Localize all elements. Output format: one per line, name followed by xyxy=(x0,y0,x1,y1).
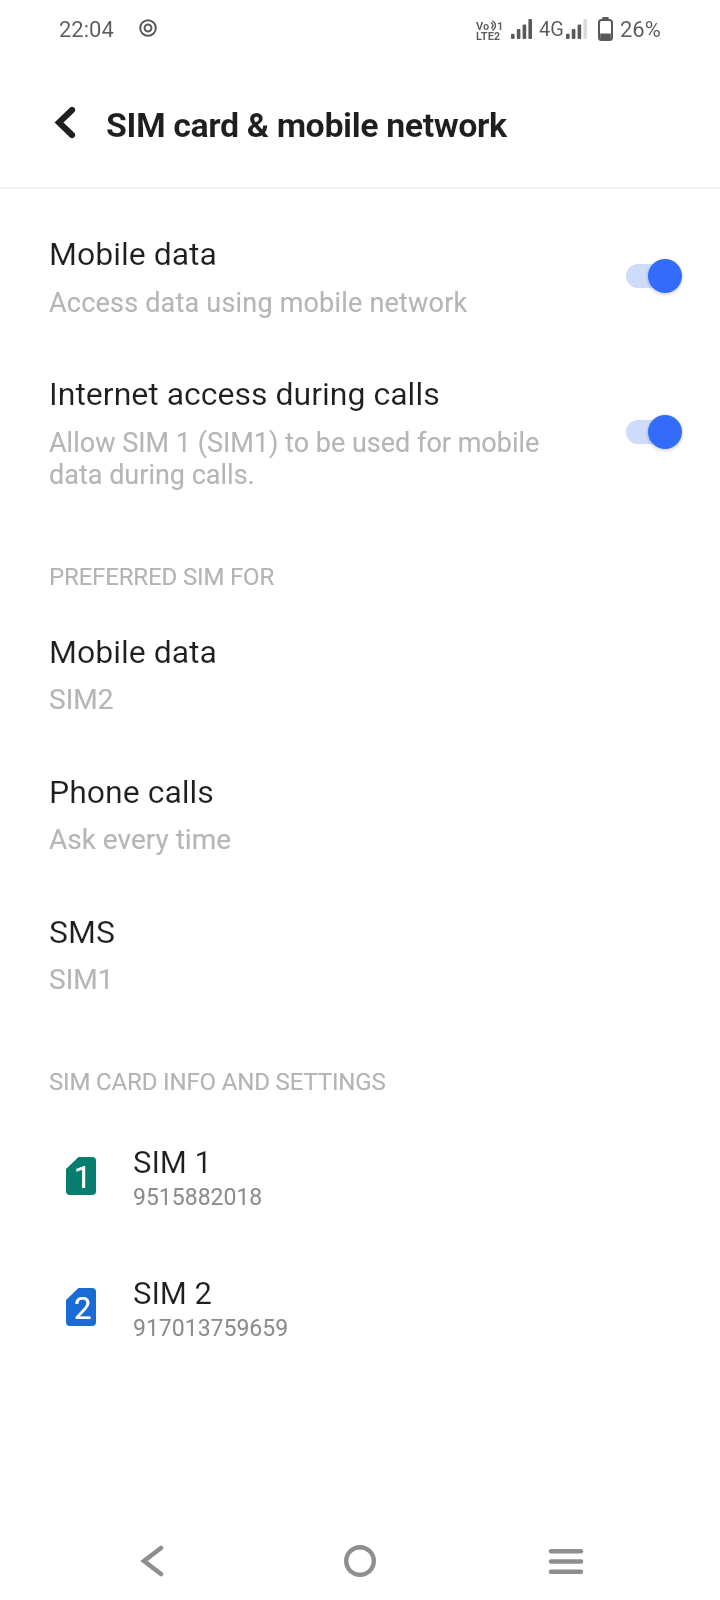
button[interactable]: Recent apps xyxy=(526,1521,606,1600)
staticText: 917013759659 xyxy=(133,1315,289,1342)
staticText: 2 xyxy=(74,1290,92,1326)
button[interactable]: Mobile data xyxy=(626,257,684,295)
button[interactable]: Back xyxy=(112,1521,192,1600)
staticText: SMS xyxy=(49,913,115,951)
button[interactable]: 1 xyxy=(0,1124,720,1224)
staticText: Access data using mobile network xyxy=(49,287,468,319)
button[interactable]: Home xyxy=(320,1521,400,1600)
staticText: 22:04 xyxy=(59,17,114,43)
button[interactable]: Internet access during calls xyxy=(626,413,684,451)
staticText: Phone calls xyxy=(49,773,214,811)
staticText: SIM CARD INFO AND SETTINGS xyxy=(49,1068,386,1096)
staticText: SIM card & mobile network xyxy=(106,105,507,145)
staticText: 1 xyxy=(497,20,502,33)
button[interactable]: Mobile data xyxy=(0,217,720,329)
button[interactable]: 2 xyxy=(0,1255,720,1355)
staticText: SIM 1 xyxy=(133,1144,213,1180)
staticText: Mobile data xyxy=(49,633,217,671)
button[interactable]: Internet access during calls xyxy=(0,359,720,507)
staticText: Vo xyxy=(476,20,490,33)
staticText: LTE2 xyxy=(476,30,501,43)
staticText: Mobile data xyxy=(49,235,217,273)
staticText: 9515882018 xyxy=(133,1184,263,1211)
staticText: 1 xyxy=(74,1159,92,1195)
button[interactable]: Phone calls xyxy=(0,769,720,881)
staticText: SIM 2 xyxy=(133,1275,213,1311)
button[interactable]: SMS xyxy=(0,909,720,1021)
staticText: PREFERRED SIM FOR xyxy=(49,563,275,591)
staticText: SIM2 xyxy=(49,683,114,716)
staticText: Ask every time xyxy=(49,823,232,856)
staticText: Allow SIM 1 (SIM1) to be used for mobile… xyxy=(49,427,540,490)
button[interactable]: Back xyxy=(31,88,99,156)
staticText: 4G xyxy=(539,17,564,40)
staticText: Internet access during calls xyxy=(49,375,440,413)
button[interactable]: Mobile data xyxy=(0,629,720,741)
staticText: 26% xyxy=(620,17,661,43)
staticText: SIM1 xyxy=(49,963,114,996)
